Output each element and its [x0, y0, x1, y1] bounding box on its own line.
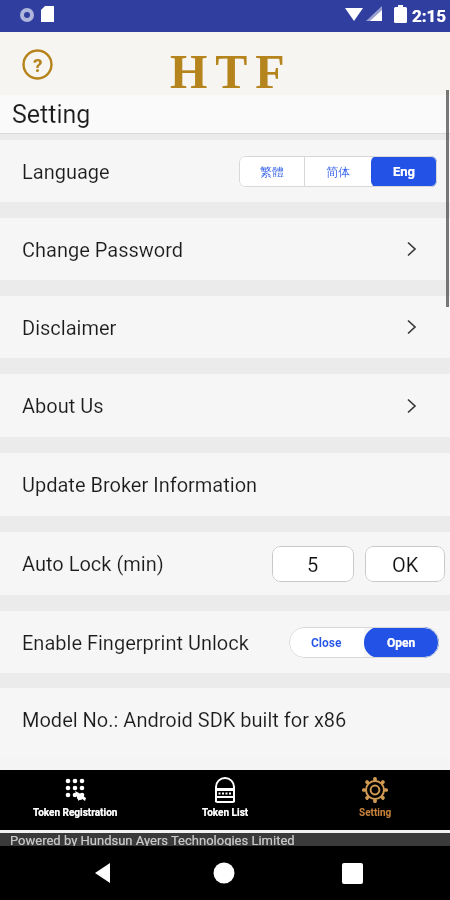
staticText: Token Registration — [33, 807, 118, 819]
button[interactable]: 繁體 — [239, 156, 304, 187]
staticText: 2:15 — [412, 6, 447, 26]
staticText: Update Broker Information — [22, 473, 258, 496]
button[interactable]: Auto Lock (min) — [0, 532, 450, 595]
button[interactable]: About Us — [0, 374, 450, 437]
staticText: Model No.: Android SDK built for x86 — [22, 708, 347, 731]
staticText: Powered by Hundsun Ayers Technologies Li… — [10, 833, 295, 846]
staticText: Close — [311, 636, 342, 650]
staticText: About Us — [22, 394, 104, 417]
staticText: Disclaimer — [22, 316, 117, 339]
staticText: OK — [392, 553, 419, 576]
button[interactable]: Setting — [300, 770, 450, 830]
staticText: Change Password — [22, 238, 184, 261]
button[interactable]: Open — [364, 627, 439, 658]
button[interactable]: Close — [289, 627, 364, 658]
staticText: Token List — [202, 807, 249, 819]
button[interactable]: 简体 — [305, 156, 371, 187]
button[interactable]: Disclaimer — [0, 296, 450, 358]
staticText: Setting — [359, 807, 392, 819]
button[interactable]: Language — [0, 140, 450, 202]
button[interactable]: Token Registration — [0, 770, 150, 830]
staticText: ? — [33, 54, 43, 76]
staticText: Setting — [12, 100, 91, 129]
staticText: Enable Fingerprint Unlock — [22, 631, 249, 654]
staticText: 简体 — [326, 164, 350, 179]
button[interactable]: Token List — [150, 770, 300, 830]
staticText: Open — [387, 636, 416, 650]
button[interactable] — [0, 846, 450, 900]
staticText: Language — [22, 160, 110, 183]
staticText: 5 — [307, 553, 319, 576]
staticText: 繁體 — [260, 164, 284, 179]
button[interactable]: Change Password — [0, 218, 450, 280]
button[interactable]: ? — [22, 49, 53, 80]
staticText: HTF — [170, 45, 293, 98]
button[interactable]: OK — [365, 546, 445, 582]
staticText: Eng — [393, 164, 416, 179]
staticText: Auto Lock (min) — [22, 552, 164, 575]
button[interactable]: Enable Fingerprint Unlock — [0, 611, 450, 673]
button[interactable]: Eng — [371, 156, 437, 187]
button[interactable]: Update Broker Information — [0, 453, 450, 516]
button[interactable]: 5 — [272, 546, 354, 582]
